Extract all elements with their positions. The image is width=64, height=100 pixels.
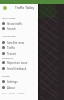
- button[interactable]: Traffic: [0, 45, 38, 50]
- staticText: MAP LAYERS: [2, 17, 16, 20]
- staticText: FEEDBACK: [2, 57, 14, 60]
- button[interactable]: Transit: [0, 51, 38, 56]
- staticText: Transit: [7, 52, 16, 56]
- staticText: v1.2 · Terms · Privacy: [2, 92, 25, 95]
- staticText: Traffic: [7, 46, 16, 50]
- button[interactable]: Settings: [0, 79, 38, 84]
- button[interactable]: Show traffic: [0, 21, 38, 26]
- button[interactable]: Report an issue: [0, 60, 38, 65]
- staticText: Search: [7, 27, 16, 31]
- staticText: Show traffic: [7, 22, 23, 26]
- button[interactable]: Satellite view: [0, 40, 38, 45]
- staticText: NAVIGATION: [2, 35, 17, 38]
- staticText: Settings: [7, 80, 18, 84]
- staticText: Satellite view: [7, 41, 25, 45]
- staticText: OTHER: [2, 75, 10, 78]
- staticText: Report an issue: [7, 61, 28, 65]
- button[interactable]: About: [0, 85, 38, 90]
- staticText: Traffic Tabby: [15, 6, 35, 10]
- staticText: About: [7, 86, 15, 90]
- staticText: Send feedback: [7, 67, 27, 71]
- button[interactable]: Search: [0, 26, 38, 31]
- button[interactable]: Send feedback: [0, 66, 38, 71]
